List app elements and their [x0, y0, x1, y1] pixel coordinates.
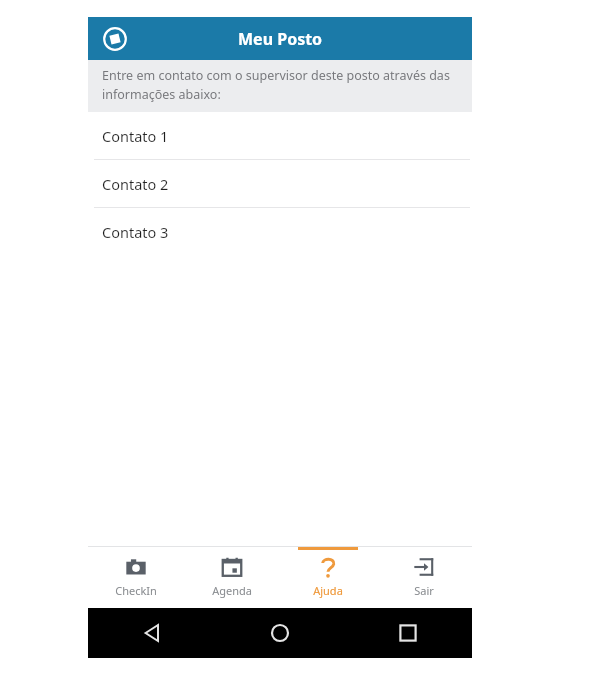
button[interactable]: Contato 2: [88, 160, 472, 207]
staticText: Meu Posto: [238, 28, 323, 50]
button[interactable]: Agenda: [184, 547, 280, 608]
staticText: Ajuda: [313, 583, 343, 598]
staticText: Entre em contato com o supervisor deste …: [102, 67, 458, 103]
staticText: Sair: [414, 583, 434, 598]
button[interactable]: CheckIn: [88, 547, 184, 608]
staticText: Contato 1: [102, 126, 169, 146]
staticText: CheckIn: [115, 583, 157, 598]
button[interactable]: Back: [88, 608, 216, 658]
button[interactable]: Home: [216, 608, 344, 658]
button[interactable]: Sair: [376, 547, 472, 608]
button[interactable]: Contato 1: [88, 112, 472, 159]
button[interactable]: Menu: [98, 22, 132, 56]
button[interactable]: Recents: [344, 608, 472, 658]
staticText: Contato 2: [102, 174, 169, 194]
staticText: Contato 3: [102, 222, 169, 242]
button[interactable]: Ajuda: [280, 547, 376, 608]
staticText: Agenda: [212, 583, 252, 598]
button[interactable]: Contato 3: [88, 208, 472, 255]
